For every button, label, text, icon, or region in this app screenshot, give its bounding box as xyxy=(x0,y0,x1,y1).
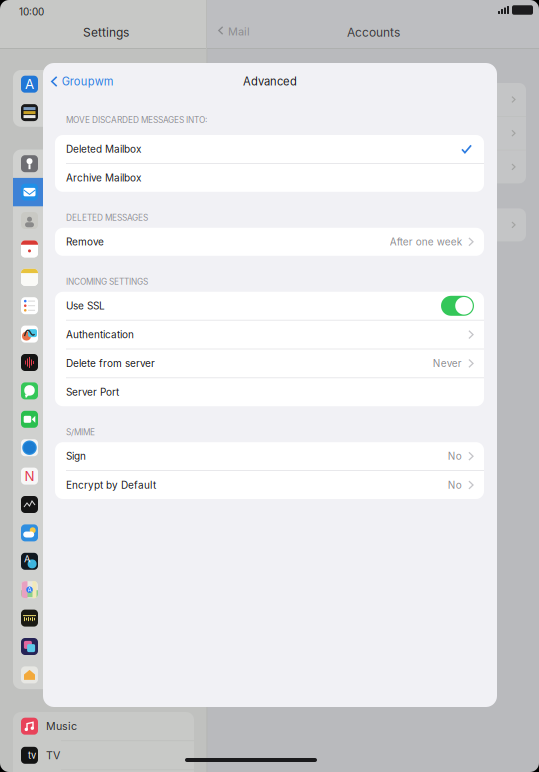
button[interactable]: Reminders xyxy=(13,291,194,320)
staticText: MOVE DISCARDED MESSAGES INTO: xyxy=(66,115,207,125)
staticText: Remove xyxy=(66,236,104,248)
button[interactable]: Calendar xyxy=(13,235,194,263)
staticText: DELETED MESSAGES xyxy=(66,213,148,223)
button[interactable]: Groupwm xyxy=(43,66,124,96)
staticText: No xyxy=(448,479,462,491)
staticText: Messages xyxy=(46,384,99,397)
button[interactable]: Sign xyxy=(55,442,484,470)
staticText: Authentication xyxy=(66,329,134,341)
button[interactable]: Delete from server xyxy=(55,349,484,377)
button[interactable]: Archive Mailbox xyxy=(55,164,484,192)
staticText: A xyxy=(25,76,34,92)
staticText: After one week xyxy=(390,236,462,248)
staticText: Mail xyxy=(46,186,68,198)
staticText: Calendar xyxy=(46,242,92,255)
button[interactable]: Measure xyxy=(13,604,194,632)
button[interactable]: FaceTime xyxy=(13,405,194,433)
button[interactable]: Home xyxy=(13,661,194,689)
staticText: Encrypt by Default xyxy=(66,479,156,491)
button[interactable]: Contacts xyxy=(13,206,194,235)
staticText: S/MIME xyxy=(66,427,95,437)
staticText: TV xyxy=(46,749,60,762)
button[interactable]: Messages xyxy=(13,377,194,405)
staticText: Sign xyxy=(66,450,86,462)
staticText: Safari xyxy=(46,441,76,454)
staticText: News xyxy=(46,470,75,482)
button[interactable]: Authentication xyxy=(55,321,484,349)
staticText: Use SSL xyxy=(66,300,105,312)
button[interactable]: A xyxy=(13,547,194,575)
staticText: Deleted Mailbox xyxy=(66,143,141,155)
button[interactable]: Encrypt by Default xyxy=(55,471,484,499)
staticText: 10:00 xyxy=(19,6,44,18)
staticText: INCOMING SETTINGS xyxy=(66,277,148,287)
staticText: Settings xyxy=(83,25,129,39)
staticText: N xyxy=(24,468,34,484)
button[interactable]: N xyxy=(13,462,194,490)
staticText: Mail xyxy=(228,25,250,38)
button[interactable]: tv xyxy=(13,741,194,769)
button[interactable]: Safari xyxy=(13,433,194,462)
staticText: Voice Memos xyxy=(46,356,114,369)
staticText: Advanced xyxy=(243,75,297,88)
staticText: A xyxy=(27,586,31,593)
staticText: Wallet xyxy=(46,106,77,119)
staticText: Delete from server xyxy=(66,357,155,369)
button[interactable]: Notes xyxy=(13,263,194,291)
button[interactable]: Wallet xyxy=(13,98,194,127)
button[interactable]: Voice Memos xyxy=(13,348,194,377)
staticText: Fetch New Data — Push, Weekly xyxy=(258,219,414,231)
staticText: iCloud — Mail, Contacts xyxy=(258,127,370,139)
staticText: Reminders xyxy=(46,299,100,312)
staticText: Groupwm xyxy=(62,75,114,88)
button[interactable]: Remove xyxy=(55,228,484,256)
button[interactable]: Freeform xyxy=(13,320,194,348)
button[interactable]: Music xyxy=(13,712,194,740)
button[interactable]: Mail xyxy=(13,178,194,206)
button[interactable]: A xyxy=(13,575,194,604)
staticText: Contacts xyxy=(46,214,91,227)
button[interactable]: A xyxy=(13,70,194,98)
staticText: Freeform xyxy=(46,328,91,340)
staticText: Accounts xyxy=(347,25,400,39)
staticText: No xyxy=(448,450,462,462)
button[interactable]: Shortcuts xyxy=(13,632,194,661)
button[interactable]: Deleted Mailbox xyxy=(55,135,484,163)
staticText: Exchange — Mail xyxy=(258,161,340,173)
staticText: Passwords xyxy=(46,157,103,170)
button[interactable]: Use SSL xyxy=(55,292,484,320)
button[interactable]: Passwords xyxy=(13,149,194,178)
staticText: A xyxy=(24,553,30,565)
staticText: Archive Mailbox xyxy=(66,172,141,184)
button[interactable]: Server Port xyxy=(55,378,484,406)
staticText: Server Port xyxy=(66,386,119,398)
staticText: Never xyxy=(433,357,462,369)
staticText: Notes xyxy=(46,271,75,284)
staticText: App Store xyxy=(46,78,96,91)
button[interactable]: Stocks xyxy=(13,490,194,519)
staticText: tv xyxy=(28,750,36,761)
button[interactable]: Weather xyxy=(13,519,194,547)
staticText: Music xyxy=(46,720,77,733)
